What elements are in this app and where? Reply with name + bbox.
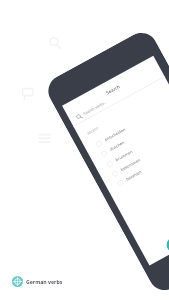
button[interactable]: Add verb (164, 234, 169, 256)
button[interactable]: bezahlen (105, 135, 169, 194)
button[interactable]: duschen (89, 105, 169, 165)
button[interactable]: bekommen (100, 125, 169, 185)
staticText: German verbs (26, 278, 63, 285)
staticText: bezahlen (125, 169, 143, 182)
staticText: Search (105, 83, 121, 96)
button[interactable]: German verbs (12, 276, 63, 287)
staticText: Search verbs... (82, 99, 108, 116)
staticText: RECENT (86, 125, 100, 135)
staticText: bekommen (120, 157, 142, 172)
staticText: duschen (109, 140, 125, 152)
button[interactable]: Search verbs... (68, 66, 164, 126)
button[interactable]: entscheiden (84, 95, 169, 155)
button[interactable]: brummen (95, 115, 169, 175)
button[interactable]: Search (64, 59, 161, 120)
staticText: brummen (115, 149, 134, 162)
staticText: entscheiden (104, 127, 126, 142)
